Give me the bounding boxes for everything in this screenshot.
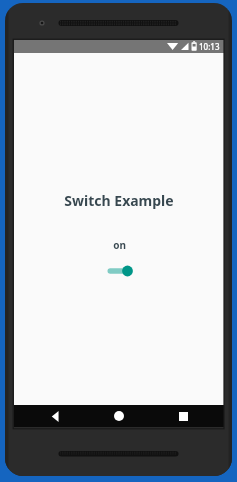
button[interactable]: Recent apps bbox=[160, 405, 206, 427]
staticText: 10:13 bbox=[199, 41, 220, 52]
button[interactable]: Back bbox=[32, 405, 78, 427]
staticText: Switch Example bbox=[64, 191, 174, 210]
button[interactable]: Home bbox=[96, 405, 142, 427]
staticText: on bbox=[113, 238, 126, 252]
button[interactable]: Toggle switch, on bbox=[102, 262, 136, 280]
